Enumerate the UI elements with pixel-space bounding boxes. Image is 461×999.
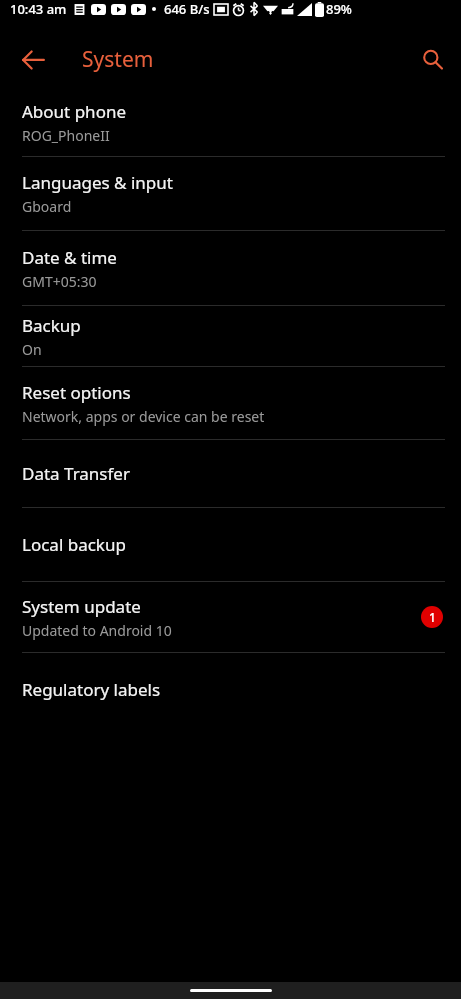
button[interactable]: Date & time [0,231,461,305]
button[interactable]: About phone [0,88,461,156]
staticText: Gboard [22,197,72,216]
staticText: Date & time [22,246,117,269]
staticText: Reset options [22,381,131,404]
staticText: Local backup [22,533,126,556]
staticText: On [22,340,42,359]
staticText: System update [22,595,141,618]
staticText: Updated to Android 10 [22,621,172,640]
staticText: 10:43 am [10,0,67,18]
staticText: Backup [22,314,81,337]
staticText: System [82,45,154,74]
staticText: 89% [326,0,352,18]
staticText: Languages & input [22,171,173,194]
button[interactable]: Local backup [0,508,461,581]
button[interactable]: Reset options [0,367,461,439]
button[interactable]: System update [0,582,461,652]
button[interactable]: Backup [0,306,461,366]
staticText: About phone [22,100,127,123]
button[interactable]: Data Transfer [0,440,461,507]
staticText: GMT+05:30 [22,272,97,291]
button[interactable]: Regulatory labels [0,653,461,725]
button[interactable]: Languages & input [0,157,461,230]
staticText: 1 [429,609,436,625]
staticText: Data Transfer [22,462,130,485]
staticText: 646 B/s [164,0,210,18]
staticText: Network, apps or device can be reset [22,407,265,426]
button[interactable]: Home [190,989,272,992]
staticText: ROG_PhoneII [22,126,110,145]
button[interactable]: Search [411,38,453,80]
staticText: Regulatory labels [22,678,161,701]
button[interactable]: Back [12,38,54,80]
